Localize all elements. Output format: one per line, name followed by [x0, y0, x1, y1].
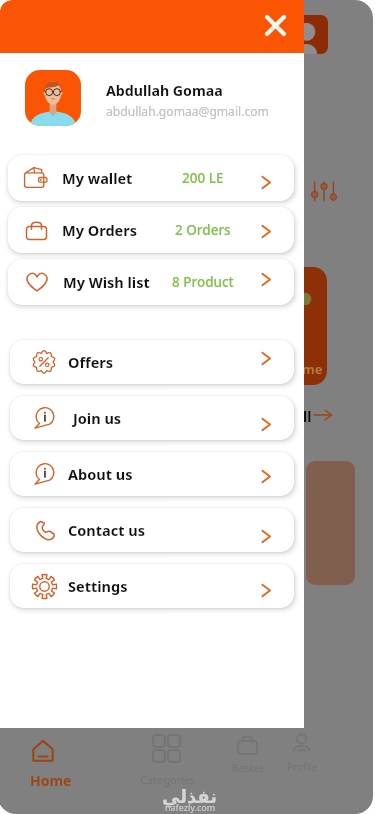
staticText: Categories: [140, 772, 196, 787]
staticText: Settings: [68, 576, 128, 596]
staticText: My Wish list: [63, 272, 150, 292]
staticText: About us: [68, 464, 133, 484]
button[interactable]: Close drawer: [257, 7, 293, 43]
button[interactable]: Join us: [10, 396, 294, 440]
button[interactable]: My Orders: [8, 207, 294, 253]
staticText: Contact us: [68, 520, 146, 540]
staticText: نفذلي: [162, 786, 218, 807]
staticText: me: [302, 360, 323, 378]
staticText: 8 Product: [172, 273, 234, 291]
staticText: ll: [303, 407, 312, 426]
staticText: Basket: [232, 761, 264, 775]
button[interactable]: Settings: [10, 564, 294, 608]
staticText: abdullah.gomaa@gmail.com: [106, 103, 269, 119]
staticText: My Orders: [62, 220, 137, 240]
staticText: 2 Orders: [175, 221, 231, 239]
button[interactable]: Contact us: [10, 508, 294, 552]
button[interactable]: Categories: [136, 730, 198, 788]
button[interactable]: Profile: [283, 726, 321, 780]
button[interactable]: Offers: [10, 340, 294, 384]
staticText: Join us: [73, 408, 122, 428]
staticText: Offers: [68, 352, 114, 372]
staticText: nafezly.com: [165, 801, 216, 813]
button[interactable]: Home: [20, 733, 84, 791]
staticText: Home: [30, 771, 72, 790]
staticText: Profile: [287, 760, 318, 774]
staticText: 200 LE: [182, 169, 224, 187]
button[interactable]: My Wish list: [8, 259, 294, 305]
staticText: My wallet: [62, 168, 133, 188]
staticText: Abdullah Gomaa: [106, 81, 223, 100]
button[interactable]: Basket: [225, 726, 271, 780]
button[interactable]: My wallet: [8, 155, 294, 201]
button[interactable]: About us: [10, 452, 294, 496]
